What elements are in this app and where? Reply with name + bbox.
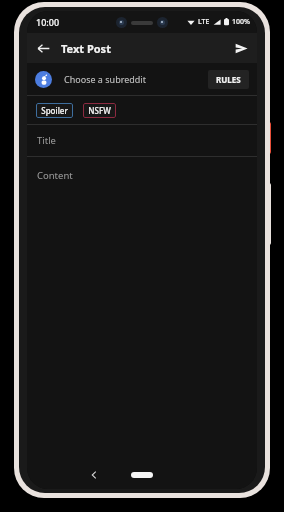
button[interactable]: Spoiler xyxy=(36,103,73,118)
staticText: Choose a subreddit xyxy=(64,73,146,85)
staticText: 100% xyxy=(232,17,250,27)
button[interactable]: Home xyxy=(131,472,153,478)
staticText: LTE xyxy=(198,17,210,27)
button[interactable]: Title xyxy=(27,125,257,156)
button[interactable]: Send post xyxy=(229,36,253,60)
button[interactable]: Back xyxy=(84,465,104,485)
staticText: Title xyxy=(37,134,56,147)
button[interactable]: RULES xyxy=(208,70,249,89)
button[interactable]: NSFW xyxy=(83,103,116,118)
staticText: Content xyxy=(37,169,73,182)
staticText: NSFW xyxy=(88,105,111,116)
staticText: 10:00 xyxy=(36,16,60,28)
staticText: RULES xyxy=(216,74,241,85)
staticText: Text Post xyxy=(61,41,111,56)
button[interactable]: Choose a subreddit xyxy=(27,63,257,95)
staticText: Spoiler xyxy=(41,105,68,116)
button[interactable]: Back xyxy=(31,36,55,60)
